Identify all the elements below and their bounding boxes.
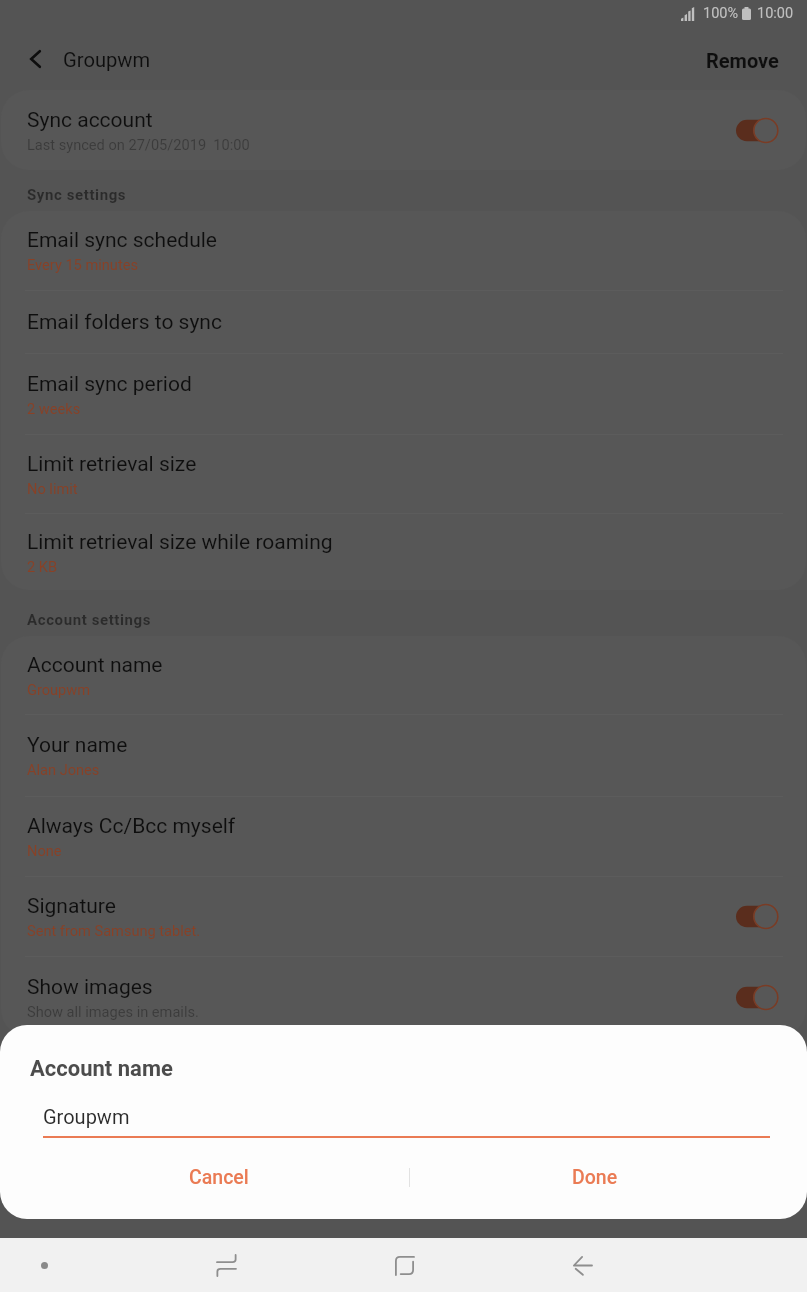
staticText: 100% — [703, 5, 739, 22]
staticText: Every 15 minutes — [27, 256, 138, 273]
button[interactable]: Your name — [1, 715, 806, 797]
button[interactable]: Done — [410, 1140, 779, 1215]
staticText: Sent from Samsung tablet. — [27, 922, 201, 939]
button[interactable]: Show images — [1, 957, 806, 1037]
staticText: Alan Jones — [27, 761, 100, 778]
staticText: Show all images in emails. — [27, 1003, 199, 1020]
staticText: Limit retrieval size — [27, 452, 197, 477]
staticText: Sync account — [27, 108, 153, 133]
staticText: Groupwm — [43, 1105, 130, 1128]
button[interactable]: Remove — [690, 39, 807, 82]
button[interactable]: Cancel — [28, 1140, 409, 1215]
button[interactable]: Signature — [1, 877, 806, 957]
staticText: Account name — [27, 653, 163, 678]
staticText: Groupwm — [63, 48, 151, 72]
button[interactable]: Recent apps — [137, 1238, 315, 1292]
staticText: Your name — [27, 733, 128, 758]
staticText: Last synced on 27/05/2019 10:00 — [27, 136, 250, 153]
staticText: Account name — [30, 1056, 173, 1082]
button[interactable]: Limit retrieval size — [1, 435, 806, 514]
button[interactable]: Email folders to sync — [1, 291, 806, 354]
button[interactable]: Limit retrieval size while roaming — [1, 514, 806, 590]
staticText: Groupwm — [27, 681, 91, 698]
staticText: 10:00 — [757, 5, 794, 22]
staticText: Account settings — [27, 611, 152, 629]
button[interactable]: Show buttons — [20, 1241, 68, 1289]
button[interactable]: Navigate up — [18, 42, 52, 76]
button[interactable]: Always Cc/Bcc myself — [1, 797, 806, 877]
button[interactable]: Back — [493, 1238, 671, 1292]
staticText: None — [27, 842, 62, 859]
staticText: Always Cc/Bcc myself — [27, 814, 236, 839]
button[interactable]: Email sync period — [1, 354, 806, 435]
staticText: Done — [572, 1166, 618, 1189]
staticText: Remove — [706, 49, 779, 72]
staticText: Signature — [27, 894, 116, 919]
staticText: Limit retrieval size while roaming — [27, 530, 333, 555]
staticText: Cancel — [189, 1166, 249, 1189]
staticText: Sync settings — [27, 186, 127, 204]
button[interactable]: Account name — [1, 636, 806, 715]
button[interactable]: Email sync schedule — [1, 211, 806, 291]
button[interactable]: Home — [315, 1238, 493, 1292]
staticText: Email sync schedule — [27, 228, 217, 253]
staticText: 2 KB — [27, 558, 58, 575]
staticText: Show images — [27, 975, 153, 1000]
staticText: 2 weeks — [27, 400, 81, 417]
staticText: Email sync period — [27, 372, 192, 397]
staticText: Email folders to sync — [27, 310, 222, 335]
button[interactable]: Sync account — [1, 90, 806, 170]
staticText: No limit — [27, 480, 78, 497]
